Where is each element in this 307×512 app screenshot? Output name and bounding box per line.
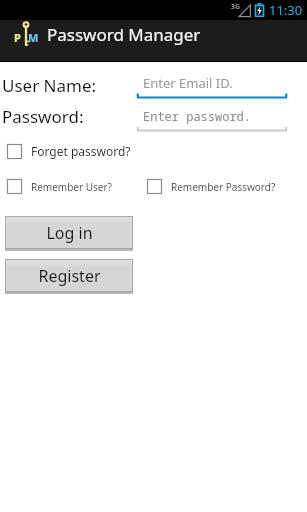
staticText: Password: [2, 105, 84, 128]
staticText: P [14, 30, 21, 45]
staticText: User Name: [2, 74, 97, 97]
button[interactable]: Remember Password? [147, 179, 276, 194]
button[interactable]: Forget password? [7, 143, 131, 159]
button[interactable]: Log in [5, 216, 133, 251]
staticText: Enter Email ID. [143, 74, 233, 92]
staticText: Enter password. [143, 108, 252, 124]
staticText: Remember User? [31, 180, 112, 194]
staticText: M [28, 30, 39, 45]
button[interactable]: Enter password. [137, 105, 287, 132]
button[interactable]: Register [5, 259, 133, 294]
staticText: 11:30 [269, 1, 303, 19]
staticText: 3G [231, 2, 241, 12]
button[interactable]: Remember User? [7, 179, 112, 194]
staticText: Forget password? [31, 143, 131, 159]
button[interactable]: Enter Email ID. [137, 72, 287, 99]
staticText: Remember Password? [171, 180, 276, 194]
staticText: Log in [46, 222, 93, 244]
staticText: Password Manager [47, 23, 201, 46]
staticText: Register [38, 265, 101, 287]
